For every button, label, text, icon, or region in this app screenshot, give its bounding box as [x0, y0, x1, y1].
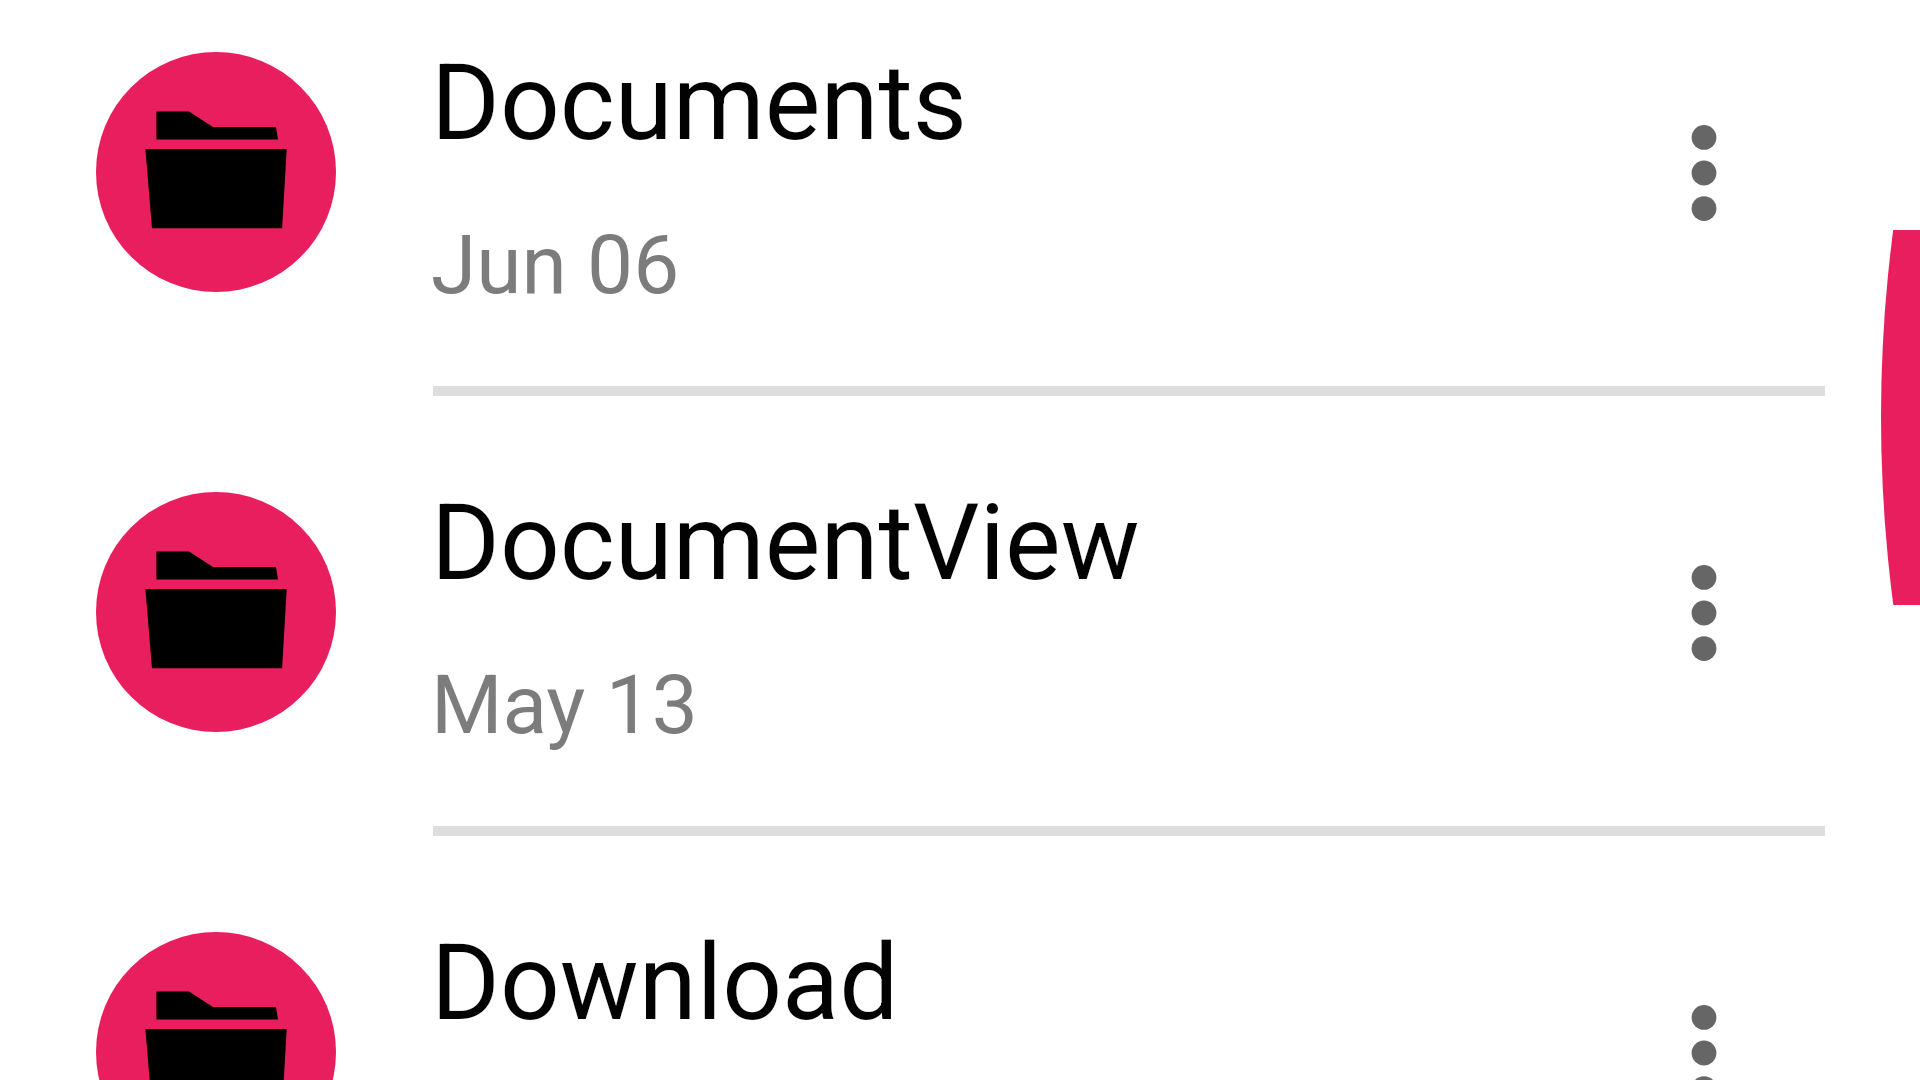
button[interactable]: More options: [1632, 516, 1776, 710]
staticText: Documents: [431, 42, 967, 165]
button[interactable]: Documents: [0, 0, 1920, 396]
staticText: DocumentView: [431, 482, 1140, 605]
button[interactable]: More options: [1632, 956, 1776, 1080]
staticText: Jun 06: [431, 217, 680, 313]
button[interactable]: Download: [0, 836, 1920, 1036]
button[interactable]: DocumentView: [0, 396, 1920, 836]
staticText: May 13: [431, 657, 698, 753]
staticText: Download: [431, 922, 899, 1045]
button[interactable]: More options: [1632, 76, 1776, 270]
button[interactable]: New folder: [1876, 230, 1920, 605]
